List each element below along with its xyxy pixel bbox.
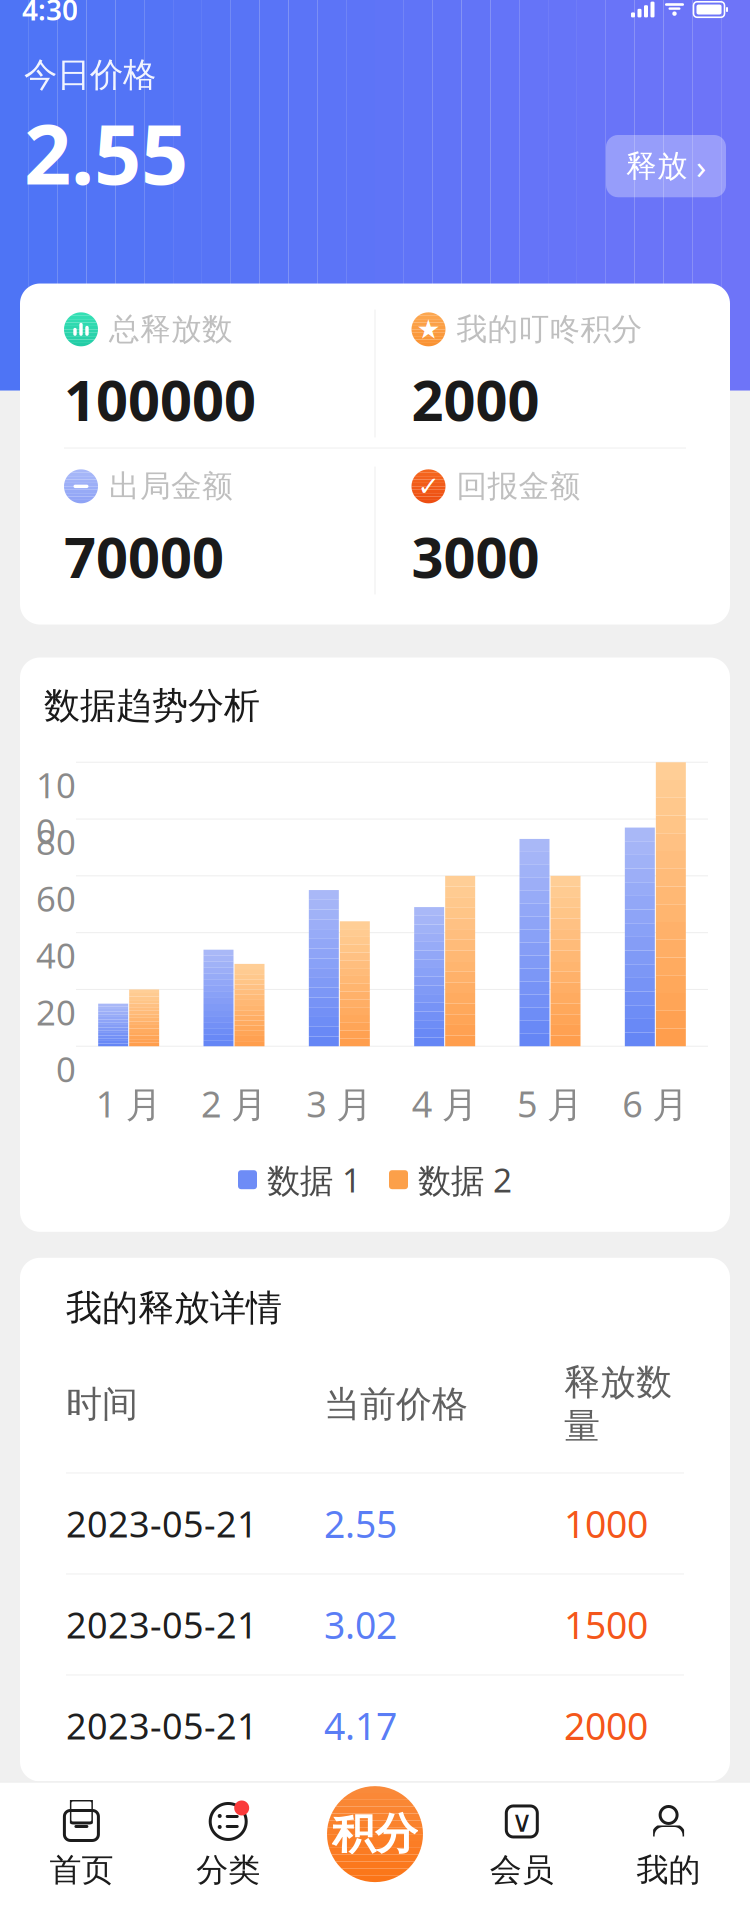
staticText: 4 月 — [412, 1080, 478, 1127]
staticText: 100000 — [64, 362, 256, 437]
staticText: 我的叮咚积分 — [456, 310, 642, 348]
staticText: 70000 — [64, 519, 224, 594]
button[interactable]: 2023-05-21 — [20, 1675, 730, 1775]
staticText: 2023-05-21 — [66, 1500, 258, 1547]
button[interactable]: 积分 — [302, 1786, 448, 1898]
staticText: 回报金额 — [456, 467, 580, 505]
staticText: 数据 1 — [267, 1158, 361, 1202]
staticText: 5 月 — [517, 1080, 583, 1127]
button[interactable]: ⌂ — [8, 1782, 155, 1902]
staticText: 2.55 — [24, 97, 188, 207]
staticText: 60 — [36, 875, 76, 921]
staticText: 分类 — [196, 1850, 260, 1890]
staticText: 积分 — [332, 1808, 418, 1860]
staticText: 1 月 — [96, 1080, 162, 1127]
button[interactable]: 释放 — [606, 135, 726, 197]
staticText: 释放 — [626, 147, 688, 185]
button[interactable]: 分类 — [155, 1782, 302, 1902]
staticText: 0 — [56, 1046, 76, 1092]
staticText: 2023-05-21 — [66, 1702, 258, 1749]
staticText: 我的 — [637, 1850, 701, 1890]
staticText: 出局金额 — [109, 467, 233, 505]
staticText: 80 — [36, 818, 76, 864]
button[interactable]: ∨ — [448, 1782, 595, 1902]
staticText: 1000 — [564, 1499, 648, 1548]
staticText: 3000 — [411, 519, 539, 594]
staticText: 4.17 — [324, 1701, 397, 1750]
staticText: 6 月 — [622, 1080, 688, 1127]
staticText: 1500 — [564, 1600, 648, 1649]
staticText: 首页 — [49, 1850, 113, 1890]
staticText: ✓ — [417, 471, 439, 501]
staticText: 总释放数 — [109, 310, 233, 348]
staticText: 3 月 — [306, 1080, 372, 1127]
staticText: 4:30 — [22, 0, 78, 28]
staticText: › — [696, 144, 706, 188]
button[interactable]: 2023-05-21 — [20, 1473, 730, 1573]
staticText: 40 — [36, 932, 76, 978]
staticText: 会员 — [490, 1850, 554, 1890]
button[interactable]: 2023-05-21 — [20, 1574, 730, 1674]
staticText: 3.02 — [324, 1600, 397, 1649]
staticText: 2 月 — [201, 1080, 267, 1127]
staticText: 100 — [36, 762, 76, 854]
staticText: 数据 2 — [418, 1158, 512, 1202]
button[interactable]: 我的 — [595, 1782, 742, 1902]
staticText: ∨ — [511, 1805, 532, 1838]
staticText: 时间 — [66, 1382, 138, 1426]
staticText: 2023-05-21 — [66, 1601, 258, 1648]
staticText: ★ — [416, 314, 440, 344]
staticText: 今日价格 — [24, 54, 156, 95]
staticText: 数据趋势分析 — [44, 683, 260, 728]
staticText: 释放数量 — [564, 1360, 672, 1448]
staticText: 2000 — [411, 362, 539, 437]
staticText: 我的释放详情 — [66, 1286, 282, 1330]
staticText: 2000 — [564, 1701, 648, 1750]
staticText: 2.55 — [324, 1499, 397, 1548]
staticText: 20 — [36, 989, 76, 1035]
staticText: 当前价格 — [324, 1382, 468, 1426]
